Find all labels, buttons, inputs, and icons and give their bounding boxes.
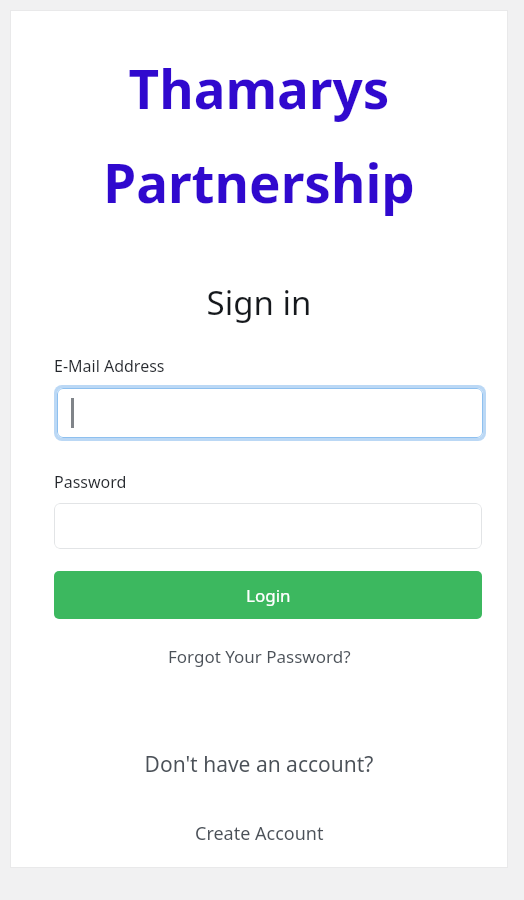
- button[interactable]: Login: [54, 571, 482, 619]
- button[interactable]: [57, 388, 483, 438]
- staticText: Forgot Your Password?: [168, 645, 351, 668]
- staticText: Don't have an account?: [10, 750, 508, 779]
- staticText: Sign in: [10, 280, 508, 325]
- button[interactable]: Forgot Your Password?: [158, 641, 361, 672]
- button[interactable]: [54, 503, 482, 549]
- staticText: Partnership: [10, 146, 508, 218]
- button[interactable]: Create Account: [185, 817, 334, 850]
- staticText: Thamarys: [10, 52, 508, 124]
- staticText: Create Account: [195, 821, 324, 846]
- staticText: E-Mail Address: [54, 355, 165, 377]
- staticText: Login: [246, 584, 291, 607]
- staticText: Password: [54, 471, 127, 493]
